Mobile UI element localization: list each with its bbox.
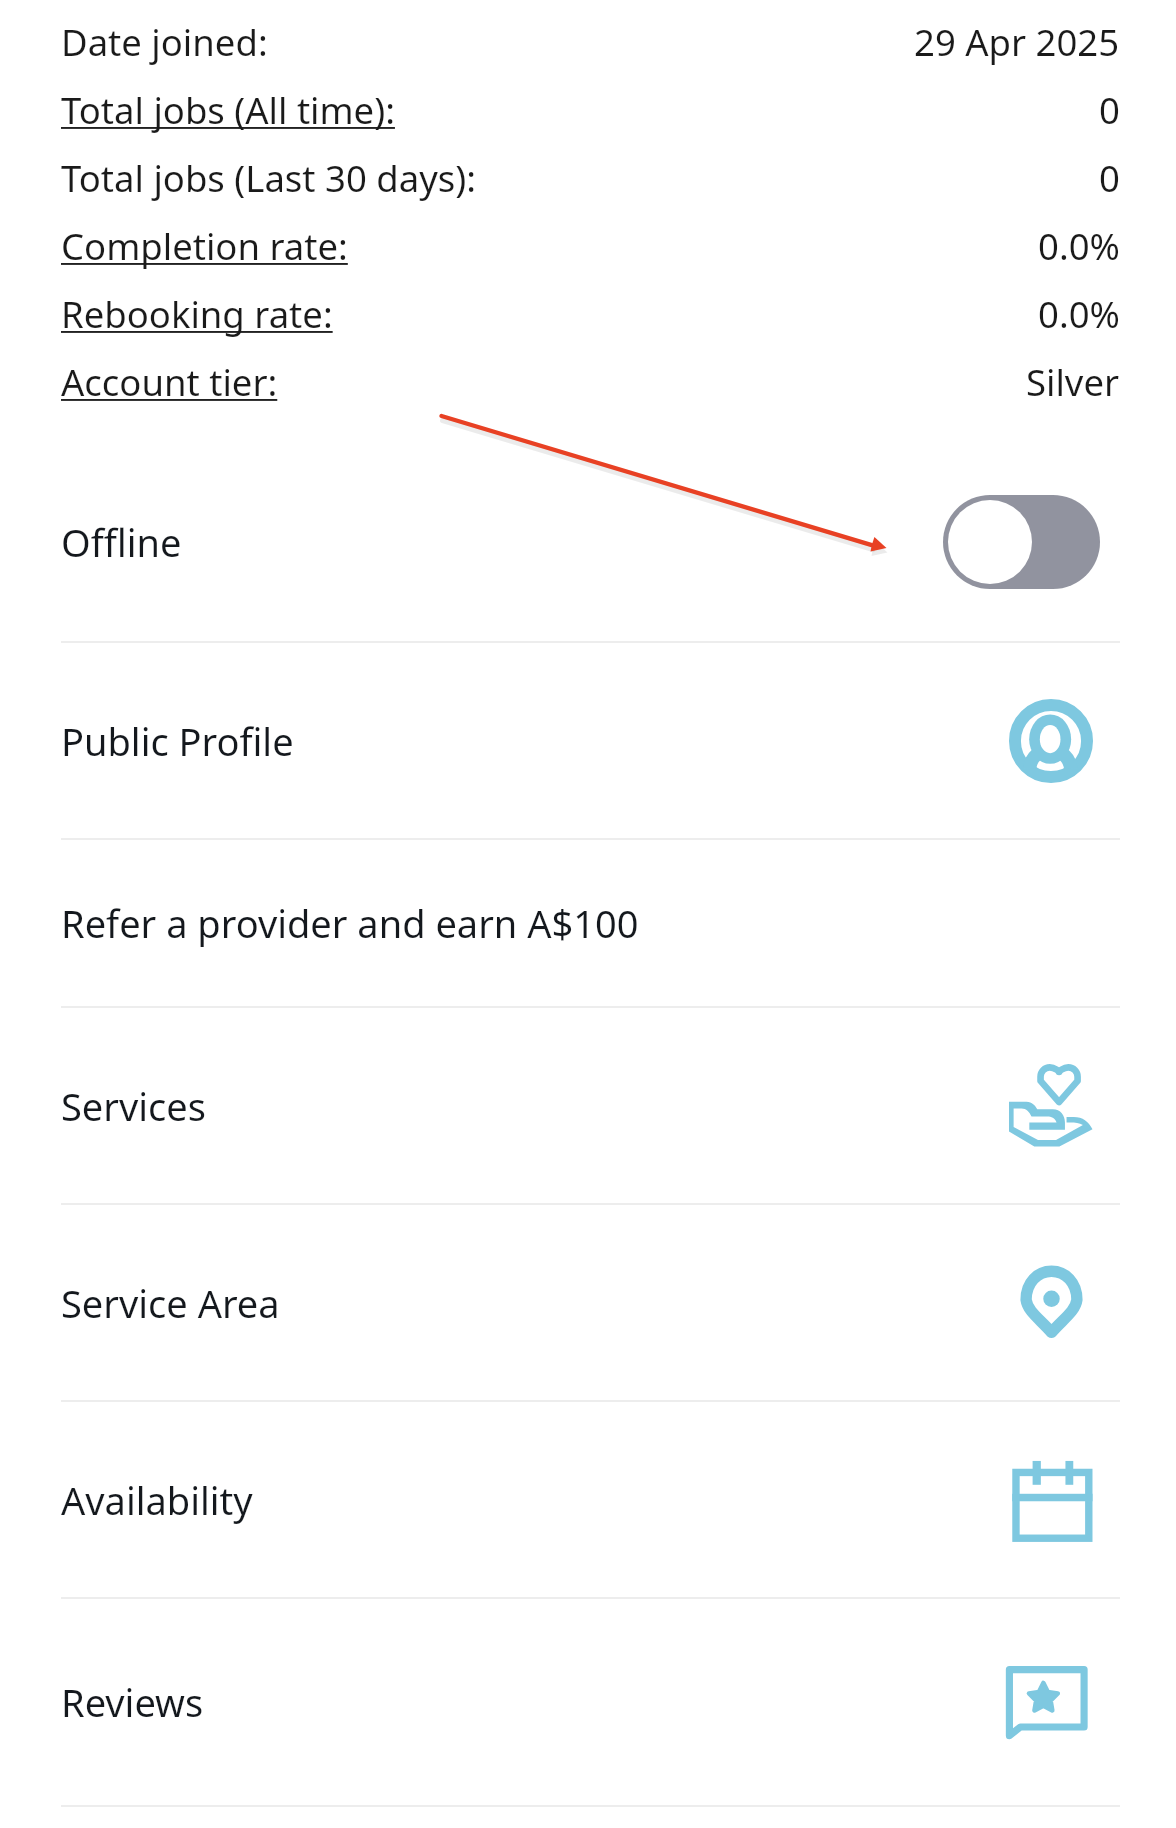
button[interactable]: Service Area	[61, 1205, 1120, 1400]
staticText: Account tier:	[61, 357, 278, 407]
staticText: Service Area	[61, 1277, 280, 1329]
button[interactable]: Reviews	[61, 1599, 1120, 1805]
staticText: Completion rate:	[61, 221, 348, 271]
staticText: Offline	[61, 516, 182, 568]
staticText: Silver	[1026, 357, 1120, 407]
button[interactable]: Availability	[61, 1402, 1120, 1597]
staticText: Rebooking rate:	[61, 289, 333, 339]
button[interactable]: Services	[61, 1008, 1120, 1203]
staticText: Reviews	[61, 1676, 204, 1728]
button[interactable]: Public Profile	[61, 643, 1120, 838]
staticText: Refer a provider and earn A$100	[61, 897, 639, 949]
staticText: Total jobs (Last 30 days):	[61, 153, 477, 203]
staticText: 0.0%	[1038, 221, 1120, 271]
staticText: 29 Apr 2025	[914, 17, 1120, 67]
staticText: Public Profile	[61, 715, 294, 767]
button[interactable]: Refer a provider and earn A$100	[61, 840, 1120, 1006]
staticText: 0	[1099, 85, 1120, 135]
staticText: Total jobs (All time):	[61, 85, 395, 135]
staticText: Date joined:	[61, 17, 268, 67]
staticText: 0	[1099, 153, 1120, 203]
staticText: Availability	[61, 1474, 253, 1526]
staticText: 0.0%	[1038, 289, 1120, 339]
button[interactable]: Offline	[61, 443, 1120, 641]
button[interactable]: Toggle online status	[943, 495, 1100, 589]
staticText: Services	[61, 1080, 206, 1132]
